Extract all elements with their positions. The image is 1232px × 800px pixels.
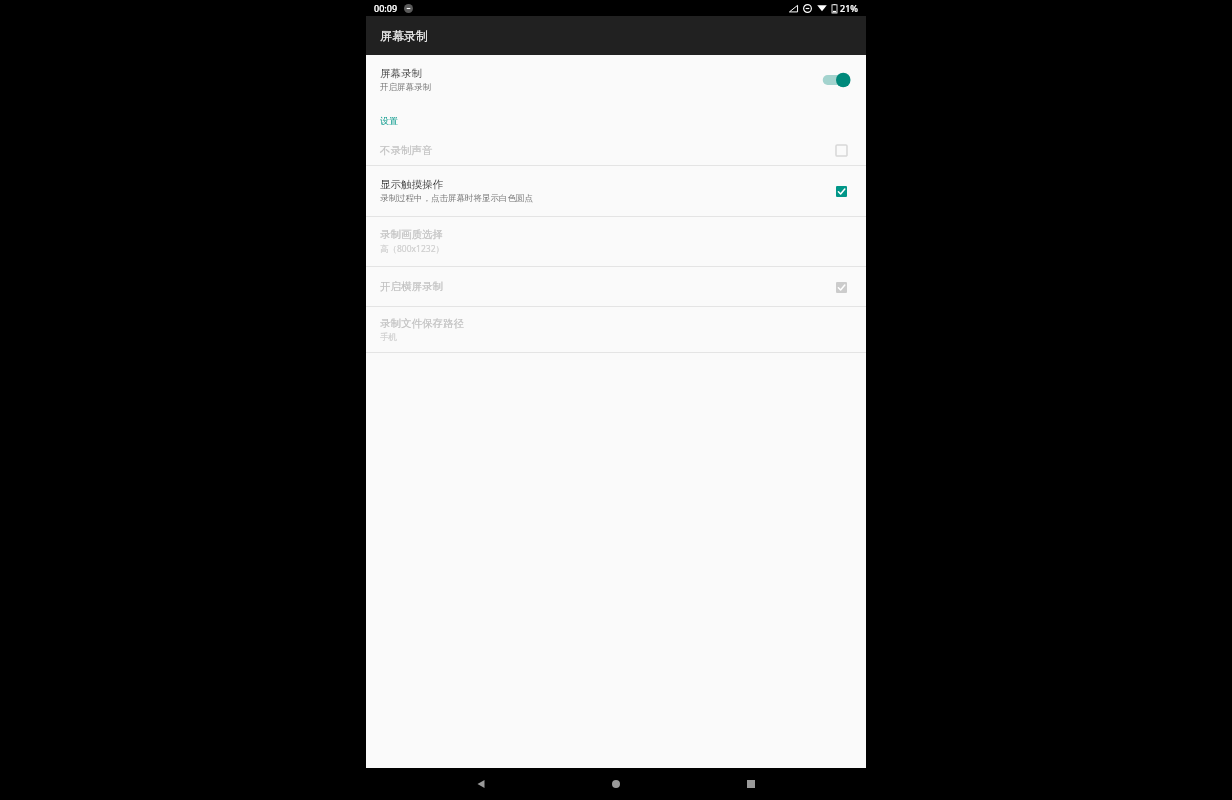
button[interactable]: Home bbox=[596, 768, 636, 800]
staticText: 开启屏幕录制 bbox=[380, 82, 431, 93]
button[interactable]: 屏幕录制 bbox=[366, 55, 866, 105]
staticText: 屏幕录制 bbox=[380, 67, 422, 80]
staticText: 录制画质选择 bbox=[380, 228, 443, 241]
button[interactable]: 屏幕录制开关 bbox=[818, 69, 852, 91]
button[interactable]: 已选中 bbox=[830, 276, 852, 298]
staticText: 屏幕录制 bbox=[380, 28, 428, 43]
button[interactable]: Recent apps bbox=[731, 768, 771, 800]
staticText: 开启横屏录制 bbox=[380, 280, 830, 293]
staticText: 录制过程中，点击屏幕时将显示白色圆点 bbox=[380, 193, 533, 204]
button[interactable]: 未选中 bbox=[830, 139, 852, 161]
button[interactable]: 开启横屏录制 bbox=[366, 267, 866, 306]
staticText: 手机 bbox=[380, 332, 397, 343]
staticText: 显示触摸操作 bbox=[380, 178, 443, 191]
button[interactable]: Back bbox=[461, 768, 501, 800]
staticText: 21% bbox=[840, 2, 858, 14]
button[interactable]: 录制画质选择 bbox=[366, 217, 866, 266]
button[interactable]: 已选中 bbox=[830, 180, 852, 202]
staticText: 高（800x1232） bbox=[380, 243, 445, 255]
button[interactable]: 录制文件保存路径 bbox=[366, 307, 866, 352]
staticText: 不录制声音 bbox=[380, 144, 830, 157]
staticText: 00:09 bbox=[374, 2, 398, 14]
staticText: 设置 bbox=[380, 115, 398, 126]
button[interactable]: 显示触摸操作 bbox=[366, 166, 866, 216]
button[interactable]: 不录制声音 bbox=[366, 135, 866, 165]
staticText: 录制文件保存路径 bbox=[380, 317, 464, 330]
